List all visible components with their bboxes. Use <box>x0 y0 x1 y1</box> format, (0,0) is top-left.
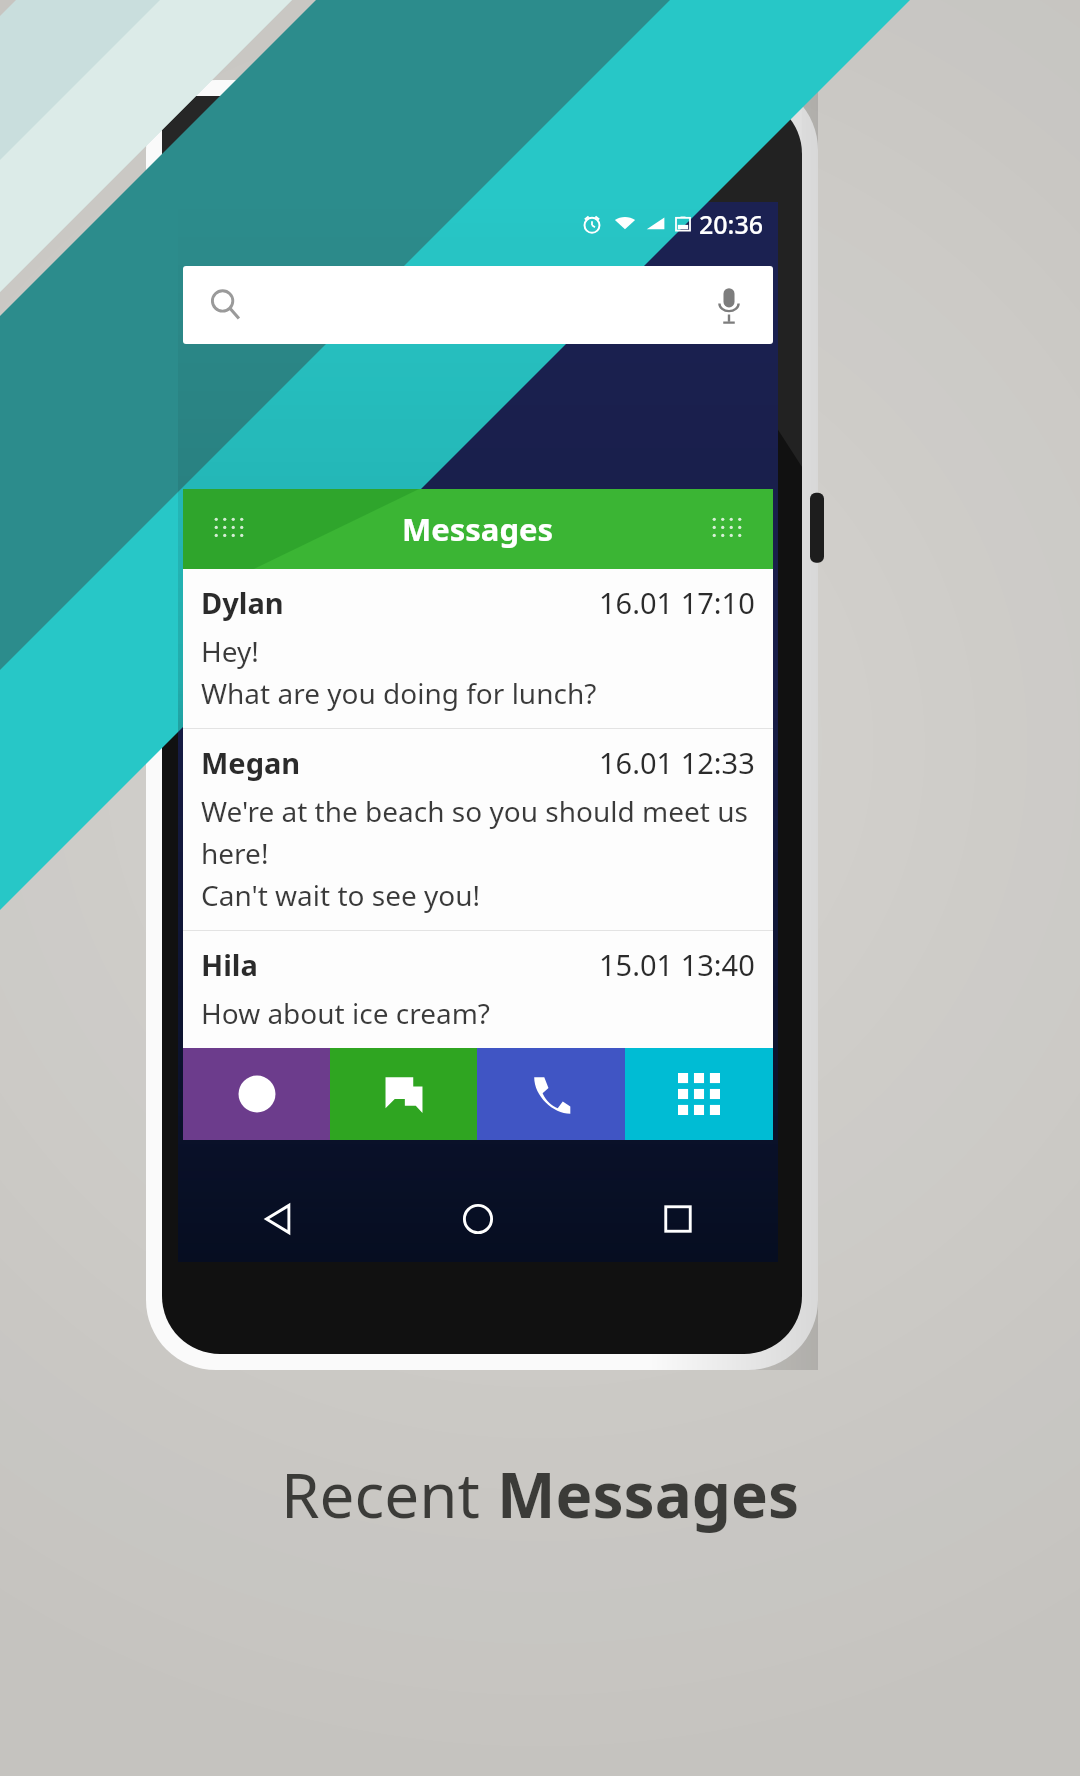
staticText: Megan <box>201 743 301 782</box>
button[interactable]: Next <box>707 509 747 549</box>
staticText: here! <box>201 834 269 872</box>
button[interactable]: Apps <box>625 1048 773 1140</box>
button[interactable]: Dylan <box>183 569 773 728</box>
staticText: What are you doing for lunch? <box>201 674 597 712</box>
staticText: Recent <box>281 1452 497 1536</box>
other: Search <box>209 288 243 322</box>
button[interactable]: Search <box>183 266 773 344</box>
button[interactable]: Back <box>178 1176 378 1262</box>
button[interactable]: Previous <box>209 509 249 549</box>
button[interactable]: Home <box>378 1176 578 1262</box>
button[interactable]: Phone <box>477 1048 625 1140</box>
staticText: Messages <box>497 1452 800 1536</box>
staticText: Messages <box>402 508 554 550</box>
button[interactable]: Megan <box>183 728 773 930</box>
button[interactable]: Camera <box>183 1048 330 1140</box>
staticText: 16.01 12:33 <box>599 743 755 782</box>
staticText: 15.01 13:40 <box>599 945 755 984</box>
button[interactable]: Messages <box>330 1048 477 1140</box>
button[interactable]: Recents <box>578 1176 778 1262</box>
staticText: Dylan <box>201 583 284 622</box>
staticText: 20:36 <box>699 207 764 241</box>
button[interactable]: Previous <box>183 489 773 569</box>
staticText: Hey! <box>201 632 259 670</box>
button[interactable]: Hila <box>183 930 773 1048</box>
staticText: We're at the beach so you should meet us <box>201 792 748 830</box>
staticText: Hila <box>201 945 258 984</box>
staticText: How about ice cream? <box>201 994 490 1032</box>
staticText: 16.01 17:10 <box>599 583 755 622</box>
button[interactable]: Voice search <box>709 266 749 344</box>
staticText: Can't wait to see you! <box>201 876 481 914</box>
